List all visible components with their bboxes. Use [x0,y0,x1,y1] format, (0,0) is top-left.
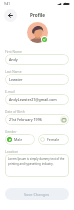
staticText: Lewster [9,77,23,82]
staticText: Last Name [5,69,22,73]
button[interactable]: Save Changes [5,188,69,200]
button[interactable]: AndyLewster21@gmail.com [5,94,69,105]
staticText: Profile [30,12,45,18]
staticText: 9:41 [4,2,10,6]
staticText: Lorem Ipsum is simply dummy text of the … [8,157,66,165]
button[interactable]: Lewster [5,74,69,85]
staticText: 21st February 1996 [9,117,42,122]
button[interactable]: Female [38,134,69,145]
staticText: AndyLewster21@gmail.com [9,97,57,102]
button[interactable]: 21st February 1996 [5,114,69,125]
staticText: Gender [5,129,17,133]
staticText: Female [47,137,60,142]
button[interactable]: Andy [5,54,69,65]
staticText: Date of Birth [5,109,25,113]
button[interactable]: Lorem Ipsum is simply dummy text of the … [5,154,69,177]
staticText: First Name [5,49,22,53]
staticText: Male [14,137,23,142]
staticText: Location [5,149,19,153]
staticText: Save Changes [24,192,50,197]
button[interactable]: Back [4,9,17,22]
staticText: E-mail [5,89,15,93]
staticText: Andy [9,57,18,62]
button[interactable]: Male [5,134,35,145]
